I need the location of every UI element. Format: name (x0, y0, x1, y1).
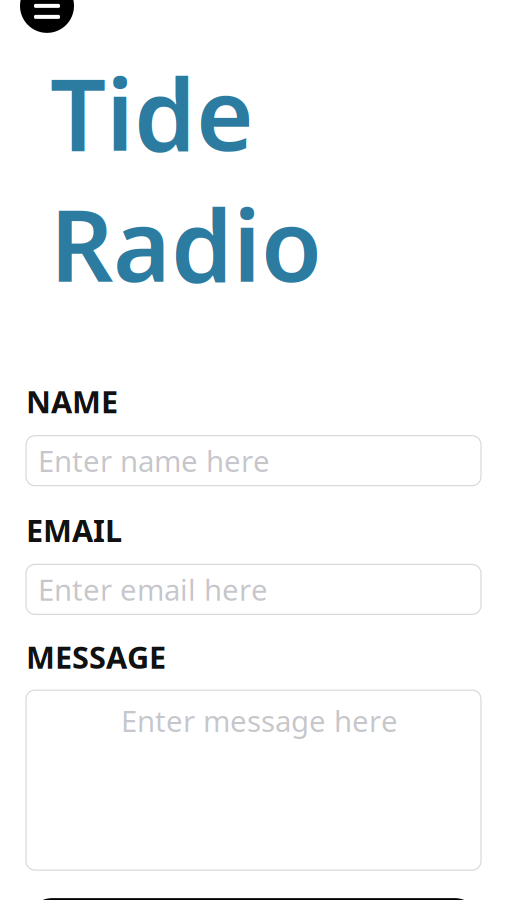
staticText: MESSAGE (26, 636, 166, 677)
staticText: NAME (26, 381, 118, 422)
staticText: Enter message here (121, 701, 398, 740)
staticText: EMAIL (26, 510, 122, 550)
staticText: Enter name here (38, 441, 270, 480)
button[interactable]: SUBMIT (26, 898, 481, 900)
staticText: Enter email here (38, 570, 268, 609)
button[interactable]: Menu (20, 0, 74, 33)
staticText: Tide Radio (50, 47, 322, 309)
